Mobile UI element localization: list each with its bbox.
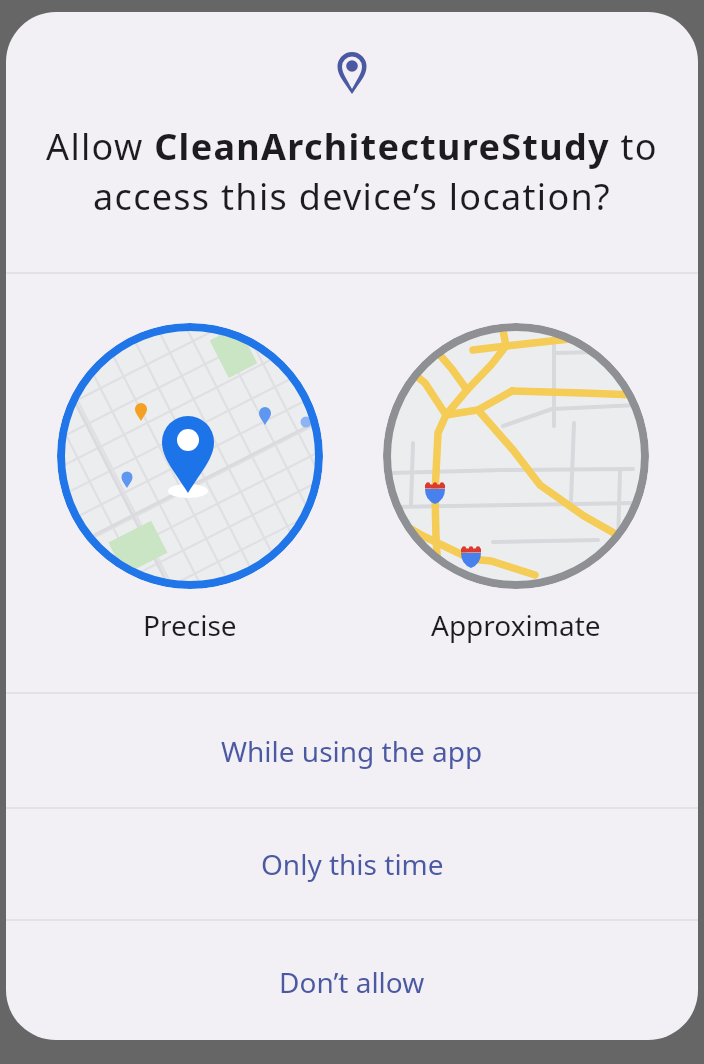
button[interactable]: While using the app xyxy=(6,694,698,807)
staticText: Precise xyxy=(143,606,237,644)
staticText: Allow CleanArchitectureStudy to access t… xyxy=(6,122,698,221)
button[interactable]: Only this time xyxy=(6,809,698,919)
staticText: Don’t allow xyxy=(279,963,425,1001)
button[interactable] xyxy=(383,323,649,589)
button[interactable]: Don’t allow xyxy=(6,924,698,1040)
button[interactable] xyxy=(57,323,323,589)
staticText: While using the app xyxy=(221,732,483,770)
staticText: Approximate xyxy=(431,606,601,644)
staticText: Only this time xyxy=(261,845,444,883)
